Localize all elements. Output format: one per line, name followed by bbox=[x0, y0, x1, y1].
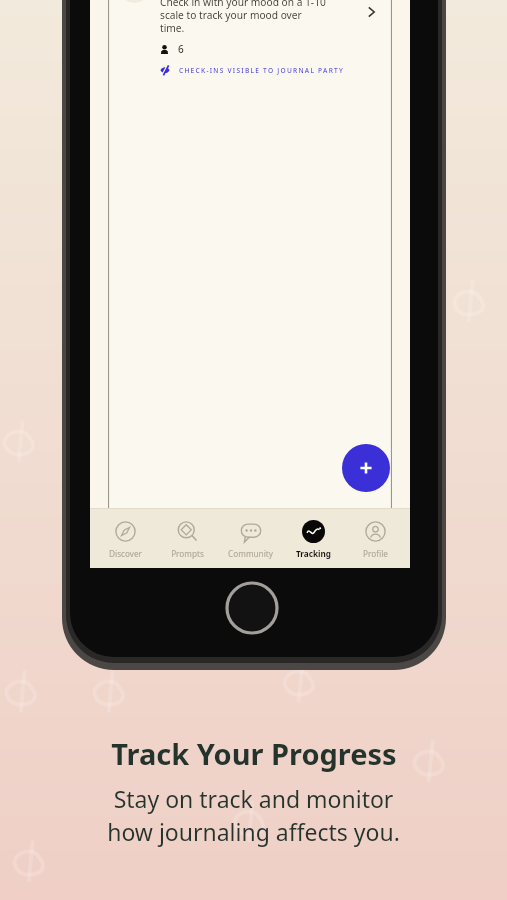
staticText: Community bbox=[228, 548, 273, 559]
staticText: Check in with your mood on a 1-10 scale … bbox=[160, 0, 326, 35]
staticText: CHECK-INS VISIBLE TO JOURNAL PARTY bbox=[179, 66, 345, 75]
staticText: Prompts bbox=[171, 548, 204, 559]
button[interactable]: Tracking bbox=[285, 519, 341, 559]
button[interactable]: Discover bbox=[97, 519, 153, 559]
button[interactable]: Community bbox=[222, 519, 278, 559]
staticText: Tracking bbox=[296, 548, 331, 559]
button[interactable]: Add tracker bbox=[342, 444, 390, 492]
staticText: Stay on track and monitor how journaling… bbox=[107, 783, 400, 848]
staticText: Profile bbox=[363, 548, 388, 559]
button[interactable]: Prompts bbox=[159, 519, 215, 559]
button[interactable]: Profile bbox=[347, 519, 403, 559]
staticText: 6 bbox=[178, 42, 184, 56]
staticText: Discover bbox=[109, 548, 142, 559]
staticText: Track Your Progress bbox=[111, 734, 397, 773]
button[interactable]: Mood Tracker bbox=[108, 0, 392, 568]
